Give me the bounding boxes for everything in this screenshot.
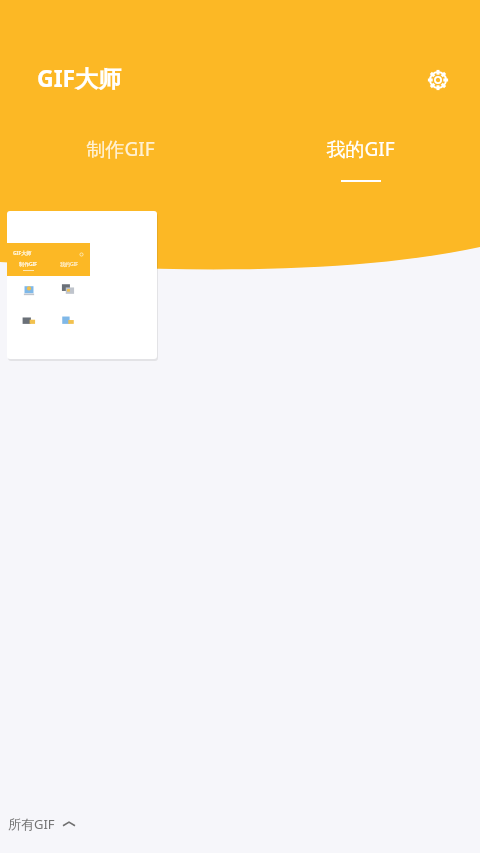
button[interactable]: GIF大师 (7, 211, 157, 359)
button[interactable]: 制作GIF (0, 136, 240, 192)
staticText: GIF大师 (13, 250, 32, 257)
staticText: 所有GIF (8, 815, 55, 833)
staticText: 制作GIF (19, 261, 37, 268)
staticText: GIF大师 (37, 62, 122, 93)
button[interactable]: 所有GIF (8, 815, 75, 833)
staticText: 制作GIF (86, 136, 155, 162)
staticText: 我的GIF (326, 136, 395, 162)
staticText: 我的GIF (60, 261, 78, 268)
button[interactable]: Settings (420, 62, 456, 98)
button[interactable]: 我的GIF (240, 136, 480, 192)
